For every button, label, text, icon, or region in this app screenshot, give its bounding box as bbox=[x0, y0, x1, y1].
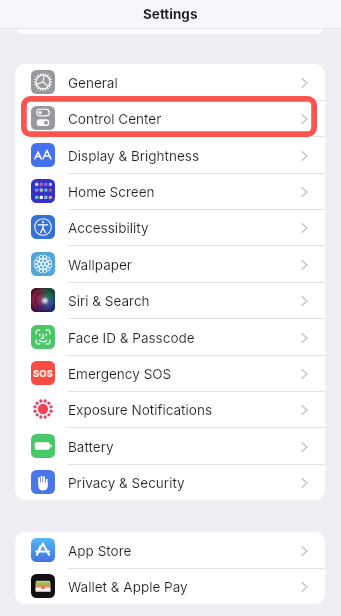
button[interactable]: App Store bbox=[15, 532, 325, 568]
button[interactable]: Display & Brightness bbox=[15, 137, 325, 173]
staticText: Accessibility bbox=[68, 220, 149, 236]
button[interactable]: Battery bbox=[15, 428, 325, 464]
staticText: Home Screen bbox=[68, 184, 155, 200]
staticText: Privacy & Security bbox=[68, 475, 185, 491]
staticText: SOS bbox=[33, 368, 53, 379]
button[interactable]: Siri & Search bbox=[15, 282, 325, 318]
staticText: General bbox=[68, 75, 118, 91]
staticText: Control Center bbox=[68, 111, 162, 127]
staticText: Settings bbox=[143, 6, 198, 22]
staticText: App Store bbox=[68, 543, 132, 559]
button[interactable]: Wallpaper bbox=[15, 246, 325, 282]
staticText: Battery bbox=[68, 439, 114, 455]
button[interactable]: Face ID & Passcode bbox=[15, 319, 325, 355]
button[interactable]: Wallet & Apple Pay bbox=[15, 568, 325, 604]
button[interactable]: Home Screen bbox=[15, 173, 325, 209]
button[interactable]: General bbox=[15, 64, 325, 100]
staticText: Emergency SOS bbox=[68, 366, 172, 382]
button[interactable]: Control Center bbox=[15, 100, 325, 136]
button[interactable]: Privacy & Security bbox=[15, 464, 325, 500]
button[interactable]: SOS bbox=[15, 355, 325, 391]
staticText: Wallpaper bbox=[68, 257, 132, 273]
staticText: Exposure Notifications bbox=[68, 402, 213, 418]
button[interactable]: Accessibility bbox=[15, 209, 325, 245]
staticText: Display & Brightness bbox=[68, 148, 200, 164]
staticText: Wallet & Apple Pay bbox=[68, 579, 188, 595]
staticText: Face ID & Passcode bbox=[68, 330, 195, 346]
button[interactable]: Exposure Notifications bbox=[15, 391, 325, 427]
staticText: Siri & Search bbox=[68, 293, 150, 309]
